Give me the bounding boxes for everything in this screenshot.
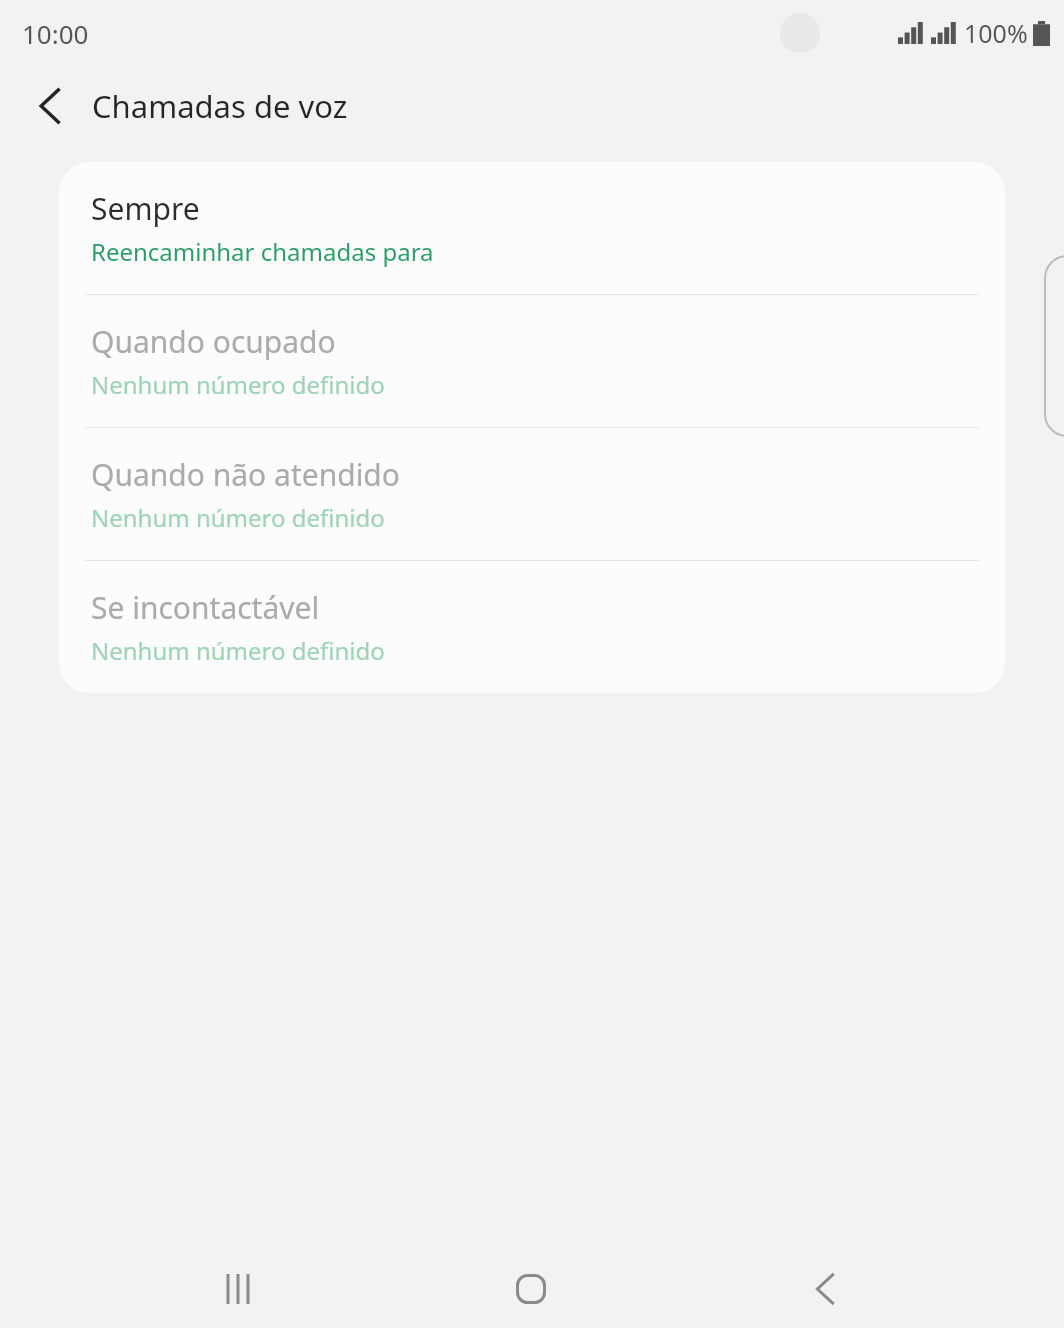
button[interactable]: Se incontactável — [59, 561, 1005, 693]
staticText: Se incontactável — [91, 587, 320, 628]
staticText: Sempre — [91, 188, 200, 229]
button[interactable]: Recent apps — [183, 1250, 293, 1328]
staticText: Nenhum número definido — [91, 634, 385, 667]
staticText: Quando ocupado — [91, 321, 336, 362]
button[interactable]: Quando ocupado — [59, 295, 1005, 427]
staticText: 10:00 — [22, 16, 89, 51]
button[interactable]: Edge panel — [1044, 255, 1064, 437]
staticText: 100% — [964, 16, 1028, 50]
staticText: Nenhum número definido — [91, 368, 385, 401]
button[interactable]: Back — [18, 74, 82, 138]
button[interactable]: Back — [770, 1250, 880, 1328]
button[interactable]: Home — [476, 1250, 586, 1328]
staticText: Nenhum número definido — [91, 501, 385, 534]
staticText: Reencaminhar chamadas para — [91, 235, 434, 268]
staticText: Quando não atendido — [91, 454, 400, 495]
button[interactable]: Quando não atendido — [59, 428, 1005, 560]
staticText: Chamadas de voz — [92, 85, 348, 127]
button[interactable]: Sempre — [59, 162, 1005, 294]
